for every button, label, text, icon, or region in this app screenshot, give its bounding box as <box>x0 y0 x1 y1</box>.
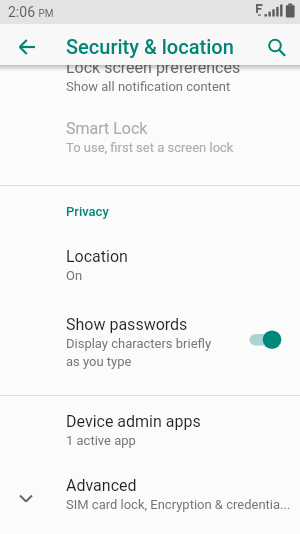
button[interactable] <box>266 37 288 59</box>
staticText: Lock screen preferences <box>66 58 241 77</box>
staticText: Location <box>66 247 128 266</box>
button[interactable]: Smart Lock <box>66 119 234 155</box>
button[interactable]: Show passwords <box>66 315 212 369</box>
staticText: Advanced <box>66 476 137 495</box>
staticText: Show passwords <box>66 315 188 334</box>
staticText: Smart Lock <box>66 119 148 138</box>
staticText: Security & location <box>66 35 234 58</box>
staticText: Device admin apps <box>66 412 201 431</box>
staticText: 1 active app <box>66 433 136 448</box>
button[interactable]: Location <box>66 247 128 283</box>
button[interactable]: Advanced <box>66 476 291 512</box>
staticText: Display characters briefly as you type <box>66 336 212 369</box>
staticText: Show all notification content <box>66 79 231 94</box>
staticText: To use, first set a screen lock <box>66 140 234 155</box>
button[interactable]: Lock screen preferences <box>66 58 241 94</box>
button[interactable]: Device admin apps <box>66 412 201 448</box>
staticText: SIM card lock, Encryption & credentia... <box>66 497 291 512</box>
staticText: On <box>66 268 83 283</box>
staticText: 2:06 PM <box>8 4 54 20</box>
button[interactable] <box>244 325 288 355</box>
staticText: Privacy <box>66 204 109 219</box>
button[interactable] <box>19 39 36 55</box>
